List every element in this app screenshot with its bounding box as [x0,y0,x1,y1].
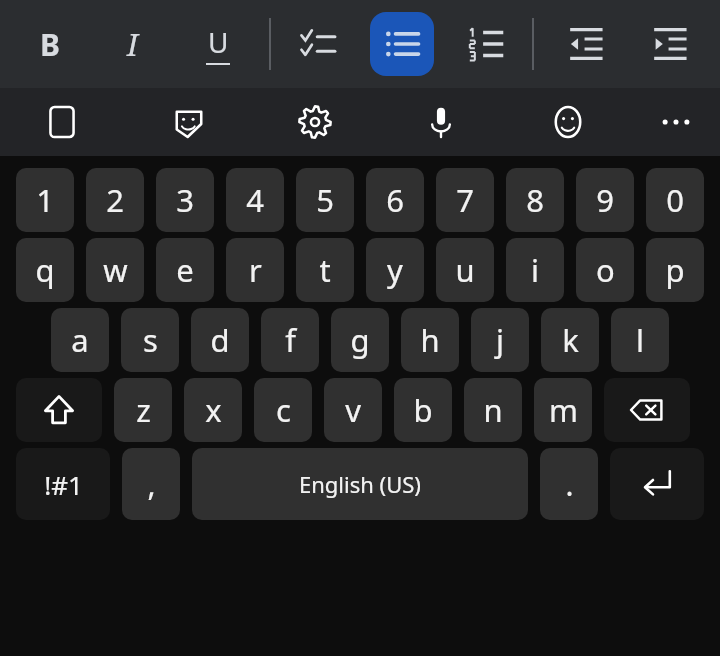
button[interactable]: x [184,378,242,442]
staticText: English (US) [299,469,421,499]
button[interactable]: Decrease indent [554,12,618,76]
button[interactable]: Stickers [161,94,217,150]
staticText: v [345,389,361,431]
button[interactable]: o [576,238,634,302]
button[interactable]: h [401,308,459,372]
button[interactable]: Voice input [413,94,469,150]
button[interactable]: d [191,308,249,372]
button[interactable]: More options [648,94,704,150]
button[interactable]: , [122,448,180,520]
button[interactable]: 2 [86,168,144,232]
staticText: j [496,319,504,361]
staticText: o [596,249,615,291]
staticText: s [143,319,158,361]
button[interactable]: z [114,378,172,442]
staticText: f [285,319,296,361]
staticText: e [176,249,194,291]
button[interactable]: 3 [156,168,214,232]
staticText: h [420,319,440,361]
staticText: t [319,249,331,291]
staticText: 2 [106,179,124,221]
staticText: u [455,249,475,291]
button[interactable]: Underline [186,12,250,76]
button[interactable]: f [261,308,319,372]
button[interactable]: Emoji [540,94,596,150]
staticText: q [35,249,55,291]
staticText: k [562,319,579,361]
button[interactable]: g [331,308,389,372]
button[interactable]: j [471,308,529,372]
button[interactable]: e [156,238,214,302]
button[interactable]: 1 [16,168,74,232]
staticText: 4 [246,179,264,221]
staticText: 6 [386,179,404,221]
button[interactable]: . [540,448,598,520]
staticText: l [636,319,644,361]
button[interactable]: 9 [576,168,634,232]
staticText: !#1 [44,467,83,502]
button[interactable]: c [254,378,312,442]
button[interactable]: b [394,378,452,442]
button[interactable]: l [611,308,669,372]
button[interactable]: m [534,378,592,442]
staticText: n [483,389,503,431]
button[interactable]: Checklist [286,12,350,76]
staticText: B [40,24,60,65]
button[interactable]: a [51,308,109,372]
staticText: 7 [456,179,474,221]
button[interactable]: 8 [506,168,564,232]
button[interactable]: 7 [436,168,494,232]
staticText: p [665,249,685,291]
button[interactable]: Increase indent [638,12,702,76]
staticText: I [127,24,139,65]
button[interactable]: Backspace [604,378,690,442]
staticText: 5 [316,179,334,221]
button[interactable]: Settings [287,94,343,150]
staticText: b [413,389,433,431]
staticText: 8 [526,179,544,221]
staticText: y [387,249,403,291]
staticText: i [531,249,539,291]
button[interactable]: Enter [610,448,704,520]
button[interactable]: 4 [226,168,284,232]
button[interactable]: 5 [296,168,354,232]
button[interactable]: t [296,238,354,302]
button[interactable]: GIF [34,94,90,150]
button[interactable]: Italic [101,12,165,76]
staticText: c [276,389,291,431]
staticText: x [205,389,222,431]
staticText: . [565,464,574,505]
button[interactable]: 6 [366,168,424,232]
button[interactable]: i [506,238,564,302]
button[interactable]: q [16,238,74,302]
button[interactable]: s [121,308,179,372]
button[interactable]: p [646,238,704,302]
staticText: 0 [666,179,684,221]
button[interactable]: 0 [646,168,704,232]
button[interactable]: v [324,378,382,442]
button[interactable]: Bulleted list [370,12,434,76]
button[interactable]: !#1 [16,448,110,520]
staticText: U [208,23,229,61]
button[interactable]: Bold [18,12,82,76]
staticText: z [136,389,151,431]
staticText: r [249,249,262,291]
button[interactable]: Numbered list [454,12,518,76]
button[interactable]: k [541,308,599,372]
staticText: 3 [176,179,194,221]
button[interactable]: r [226,238,284,302]
button[interactable]: English (US) [192,448,528,520]
staticText: m [549,389,578,431]
button[interactable]: w [86,238,144,302]
staticText: a [71,319,89,361]
button[interactable]: y [366,238,424,302]
staticText: d [210,319,230,361]
button[interactable]: n [464,378,522,442]
staticText: w [103,249,128,291]
button[interactable]: Shift [16,378,102,442]
button[interactable]: u [436,238,494,302]
staticText: 1 [36,179,54,221]
staticText: 9 [596,179,614,221]
staticText: , [147,464,156,505]
staticText: g [350,319,370,361]
